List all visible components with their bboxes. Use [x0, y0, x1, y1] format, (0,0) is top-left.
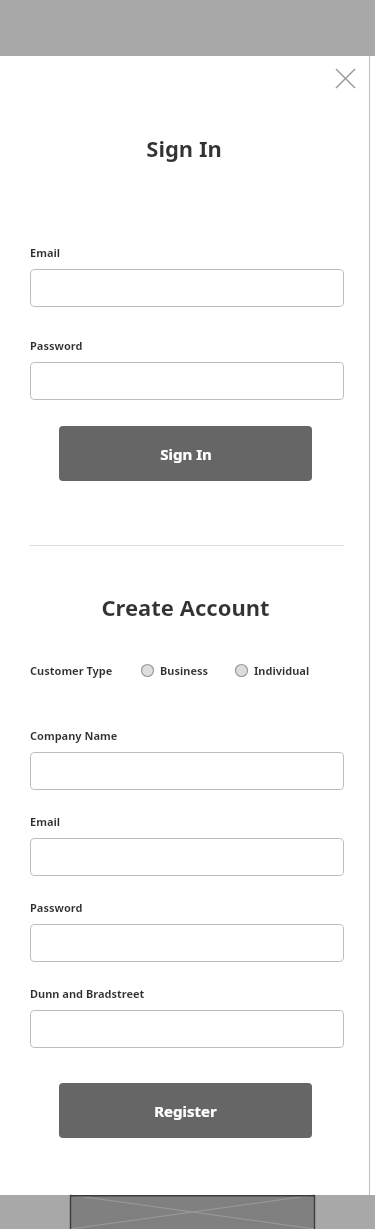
staticText: Dunn and Bradstreet	[30, 986, 145, 1001]
staticText: Business	[160, 663, 209, 678]
button[interactable]	[30, 924, 344, 962]
staticText: Password	[30, 900, 83, 915]
staticText: Password	[30, 338, 83, 353]
button[interactable]: Close	[331, 64, 359, 92]
staticText: Customer Type	[30, 663, 113, 678]
button[interactable]	[30, 1010, 344, 1048]
button[interactable]: Image placeholder	[70, 1195, 315, 1229]
button[interactable]	[30, 269, 344, 307]
staticText: Sign In	[160, 444, 212, 464]
button[interactable]	[30, 752, 344, 790]
button[interactable]: Business	[141, 663, 209, 678]
button[interactable]: Register	[59, 1083, 312, 1138]
staticText: Create Account	[101, 592, 270, 622]
staticText: Company Name	[30, 728, 118, 743]
button[interactable]	[30, 838, 344, 876]
button[interactable]: Sign In	[59, 426, 312, 481]
button[interactable]	[30, 362, 344, 400]
staticText: Individual	[254, 663, 310, 678]
staticText: Email	[30, 814, 61, 829]
button[interactable]: Individual	[235, 663, 310, 678]
staticText: Register	[154, 1101, 217, 1121]
staticText: Email	[30, 245, 61, 260]
staticText: Sign In	[146, 133, 222, 163]
